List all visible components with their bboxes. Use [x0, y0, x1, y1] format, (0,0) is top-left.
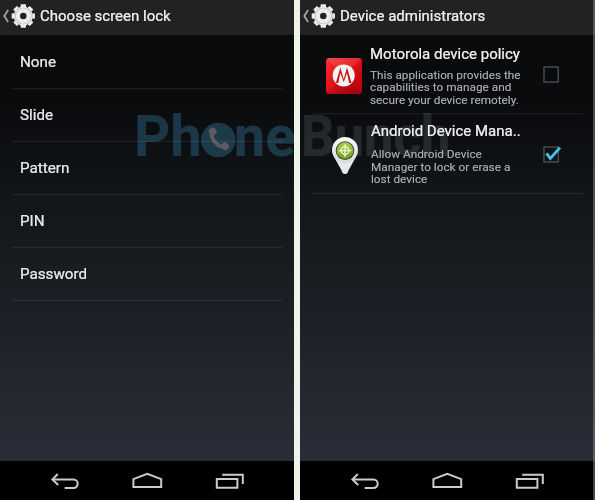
staticText: Phone — [134, 102, 296, 170]
staticText: Choose screen lock — [40, 7, 171, 25]
staticText: None — [20, 53, 56, 71]
staticText: Device administrators — [340, 7, 486, 25]
staticText: Password — [20, 265, 88, 283]
staticText: PIN — [20, 212, 45, 230]
button[interactable]: Password — [0, 247, 294, 300]
staticText: Slide — [20, 106, 54, 124]
button[interactable]: Recent apps — [510, 461, 552, 500]
staticText: Pattern — [20, 159, 70, 177]
staticText: capabilities to manage and — [370, 80, 512, 94]
button[interactable]: Recent apps — [210, 461, 252, 500]
button[interactable]: Home — [126, 461, 168, 500]
button[interactable]: Navigate up — [300, 0, 338, 35]
staticText: Allow Android Device — [371, 147, 482, 161]
staticText: Manager to lock or erase a — [371, 160, 511, 174]
staticText: Motorola device policy — [370, 45, 520, 63]
button[interactable]: Android Device Mana.. — [300, 114, 595, 194]
staticText: Bunch — [301, 102, 451, 170]
button[interactable]: Pattern — [0, 141, 294, 194]
button[interactable]: Motorola device policy — [300, 35, 595, 114]
staticText: Android Device Mana.. — [371, 122, 521, 140]
button[interactable]: Not activated — [537, 60, 567, 90]
button[interactable]: Home — [426, 461, 468, 500]
button[interactable]: Navigate up — [0, 0, 38, 35]
button[interactable]: Activated — [537, 140, 567, 170]
staticText: lost device — [371, 172, 428, 186]
staticText: This application provides the — [370, 68, 521, 82]
button[interactable]: None — [0, 35, 294, 88]
staticText: secure your device remotely. — [370, 93, 519, 107]
button[interactable]: PIN — [0, 194, 294, 247]
button[interactable]: Back — [344, 461, 388, 500]
button[interactable]: Slide — [0, 88, 294, 141]
button[interactable]: Back — [44, 461, 88, 500]
